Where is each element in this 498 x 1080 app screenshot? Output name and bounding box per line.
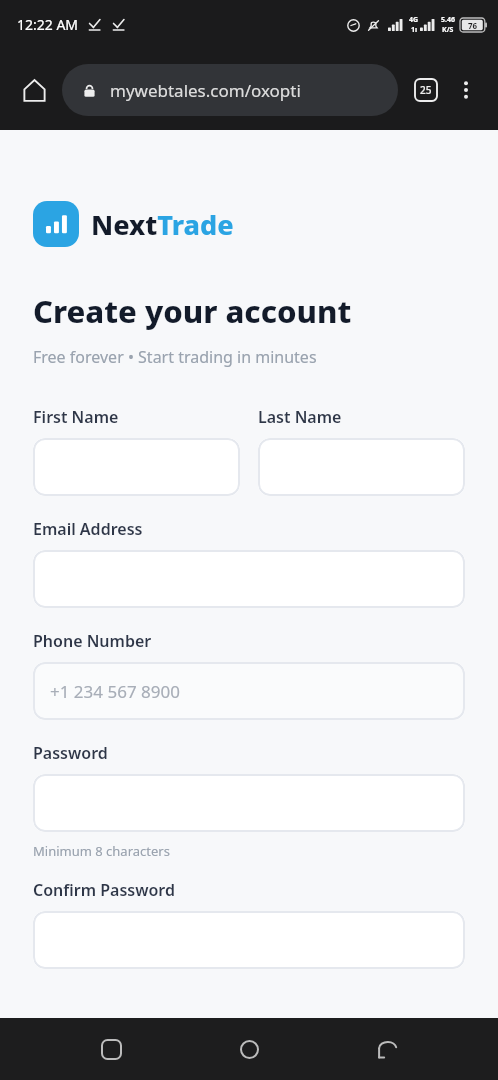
staticText: Phone Number [33, 630, 152, 652]
staticText: 5.46 [441, 15, 455, 25]
staticText: K/S [442, 25, 454, 35]
button[interactable] [33, 911, 465, 969]
staticText: 1ı [411, 25, 418, 35]
staticText: Confirm Password [33, 879, 175, 901]
staticText: Free forever • Start trading in minutes [33, 346, 317, 368]
staticText: 25 [420, 83, 432, 97]
staticText: Minimum 8 characters [33, 842, 170, 860]
button[interactable] [258, 438, 465, 496]
staticText: Email Address [33, 518, 143, 540]
staticText: 4G [409, 15, 419, 25]
button[interactable] [33, 774, 465, 832]
button[interactable]: Back [360, 1022, 414, 1076]
button[interactable]: Home [12, 68, 56, 112]
button[interactable]: NextTrade [33, 201, 234, 247]
staticText: +1 234 567 8900 [50, 680, 180, 703]
staticText: Create your account [33, 290, 352, 332]
staticText: 12:22 AM [17, 15, 79, 34]
button[interactable]: Home [222, 1022, 276, 1076]
staticText: First Name [33, 406, 119, 428]
button[interactable]: More options [446, 70, 486, 110]
button[interactable] [33, 550, 465, 608]
staticText: mywebtales.com/oxopti [110, 79, 301, 102]
button[interactable]: mywebtales.com/oxopti [62, 64, 398, 116]
button[interactable] [33, 438, 240, 496]
button[interactable]: Recents [84, 1022, 138, 1076]
button[interactable]: Tabs [406, 70, 446, 110]
staticText: NextTrade [91, 206, 234, 243]
staticText: Password [33, 742, 108, 764]
button[interactable]: +1 234 567 8900 [33, 662, 465, 720]
staticText: 76 [468, 20, 478, 31]
staticText: Last Name [258, 406, 342, 428]
